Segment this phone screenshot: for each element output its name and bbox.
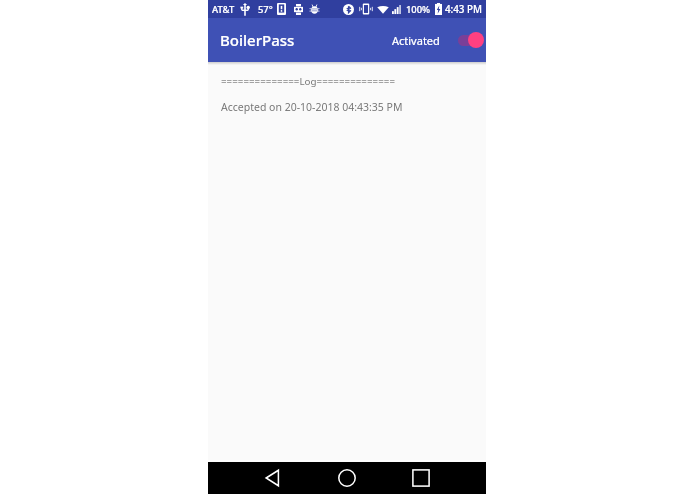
staticText: AT&T: [212, 3, 235, 16]
staticText: ==============Log==============: [221, 75, 395, 88]
button[interactable]: Activated toggle: [392, 18, 486, 62]
staticText: Activated: [392, 33, 440, 48]
button[interactable]: Back: [252, 462, 294, 494]
staticText: 57°: [258, 3, 273, 16]
staticText: Accepted on 20-10-2018 04:43:35 PM: [221, 100, 403, 114]
staticText: 4:43 PM: [445, 3, 482, 16]
staticText: BoilerPass: [220, 30, 295, 50]
button[interactable]: Home: [326, 462, 368, 494]
button[interactable]: Recents: [400, 462, 442, 494]
staticText: 100%: [406, 3, 431, 16]
